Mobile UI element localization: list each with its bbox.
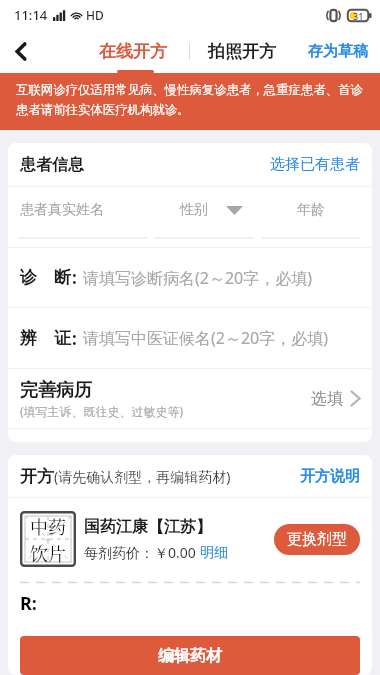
- staticText: 证: [54, 328, 71, 349]
- staticText: 编辑药材: [158, 646, 222, 666]
- staticText: 选择已有患者: [270, 155, 360, 174]
- staticText: 11:14: [14, 6, 48, 24]
- button[interactable]: 诊: [20, 248, 360, 307]
- staticText: 每剂药价：￥0.00: [84, 543, 196, 562]
- staticText: :: [72, 266, 77, 289]
- button[interactable]: 在线开方: [97, 41, 169, 62]
- staticText: 在线开方: [99, 41, 167, 62]
- staticText: (请先确认剂型，再编辑药材): [54, 467, 231, 486]
- button[interactable]: Back: [0, 30, 42, 73]
- staticText: 开方: [20, 466, 54, 487]
- staticText: 拍照开方: [208, 41, 276, 62]
- staticText: 性别: [180, 201, 208, 219]
- staticText: 31: [353, 10, 364, 22]
- staticText: :: [72, 327, 77, 350]
- button[interactable]: 拍照开方: [206, 41, 278, 62]
- button[interactable]: 开方说明: [300, 467, 360, 486]
- button[interactable]: 更换剂型: [274, 524, 360, 555]
- staticText: 明细: [200, 544, 228, 562]
- staticText: 患者真实姓名: [20, 201, 104, 219]
- staticText: 断: [54, 267, 71, 288]
- staticText: 诊: [20, 267, 37, 288]
- staticText: 中药: [30, 513, 66, 539]
- staticText: 开方说明: [300, 467, 360, 486]
- button[interactable]: 存为草稿: [308, 42, 380, 61]
- staticText: 辨: [20, 328, 37, 349]
- button[interactable]: 患者真实姓名: [20, 201, 180, 219]
- staticText: 患者信息: [20, 155, 84, 175]
- button[interactable]: 明细: [200, 544, 228, 562]
- staticText: 更换剂型: [287, 530, 347, 549]
- button[interactable]: 性别: [180, 201, 297, 219]
- staticText: HD: [86, 7, 104, 23]
- button[interactable]: 辨: [20, 308, 360, 368]
- staticText: 请填写诊断病名(2～20字，必填): [83, 267, 313, 289]
- staticText: 请填写中医证候名(2～20字，必填): [83, 327, 329, 349]
- staticText: 国药江康【江苏】: [84, 517, 212, 537]
- staticText: 互联网诊疗仅适用常见病、慢性病复诊患者，急重症患者、首诊患者请前往实体医疗机构就…: [16, 82, 375, 118]
- button[interactable]: 编辑药材: [20, 636, 360, 675]
- staticText: 完善病历: [20, 379, 92, 402]
- button[interactable]: 选择已有患者: [270, 155, 360, 174]
- staticText: 年龄: [297, 201, 325, 219]
- staticText: R:: [20, 591, 37, 616]
- staticText: 饮片: [30, 540, 66, 566]
- staticText: (填写主诉、既往史、过敏史等): [20, 403, 184, 419]
- staticText: 存为草稿: [308, 42, 368, 61]
- button[interactable]: 年龄: [297, 201, 360, 219]
- button[interactable]: 完善病历: [20, 369, 360, 428]
- staticText: 选填: [311, 389, 343, 409]
